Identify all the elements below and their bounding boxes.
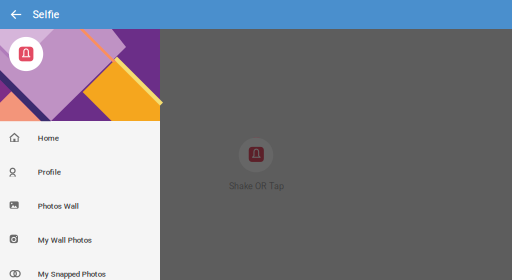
button[interactable]: Profile — [0, 155, 160, 189]
staticText: Selfie — [32, 8, 59, 21]
staticText: My Wall Photos — [38, 235, 92, 245]
staticText: My Snapped Photos — [38, 269, 106, 279]
button[interactable]: Home — [0, 121, 160, 155]
button[interactable]: My Snapped Photos — [0, 257, 160, 280]
staticText: Shake OR Tap — [229, 181, 284, 191]
button[interactable]: My Wall Photos — [0, 223, 160, 257]
staticText: Profile — [38, 167, 61, 177]
staticText: Photos Wall — [38, 201, 79, 211]
button[interactable]: Back — [0, 0, 26, 29]
button[interactable]: Photos Wall — [0, 189, 160, 223]
staticText: Home — [38, 133, 59, 143]
